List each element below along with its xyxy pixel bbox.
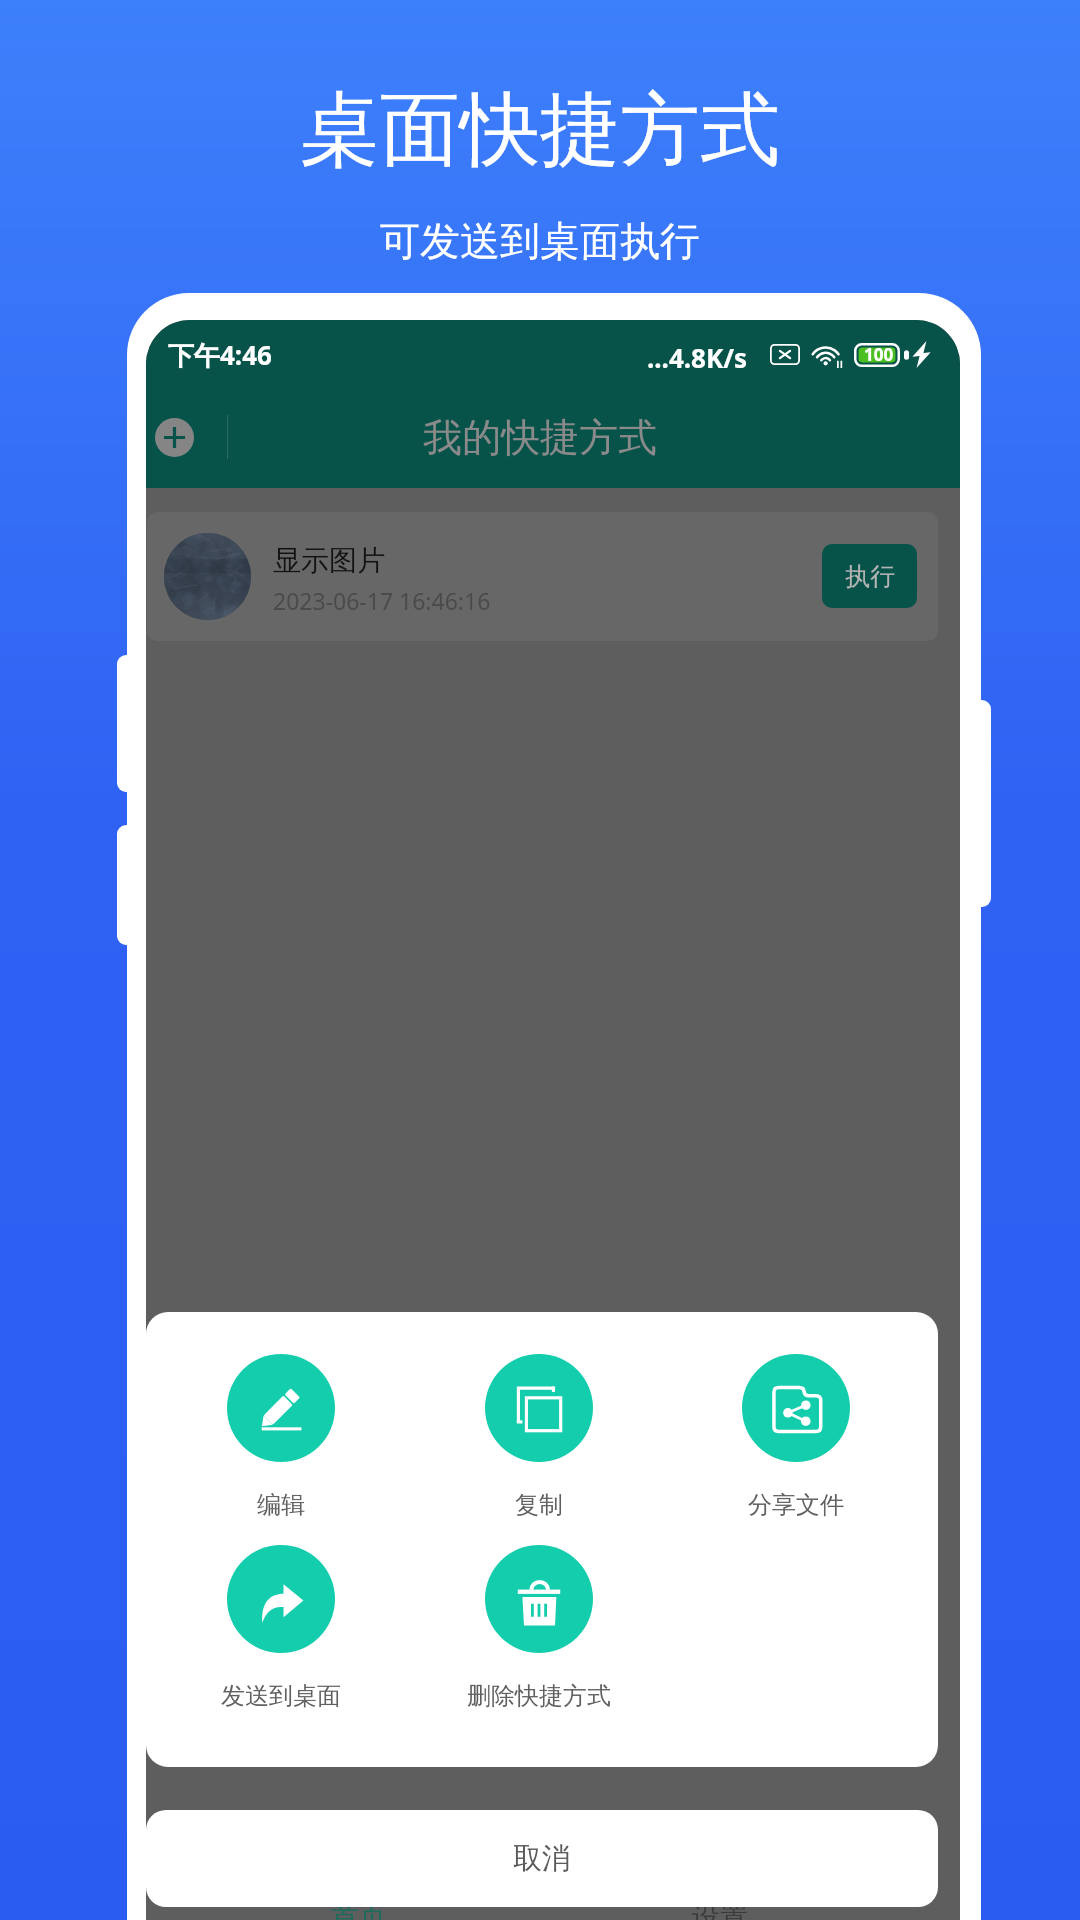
button[interactable]: Add shortcut — [155, 418, 194, 457]
staticText: 100 — [864, 343, 894, 366]
staticText: 2023-06-17 16:46:16 — [273, 585, 491, 616]
button[interactable]: 设置 — [692, 1900, 752, 1920]
button[interactable] — [227, 1354, 335, 1552]
staticText: 复制 — [515, 1490, 563, 1520]
staticText: 可发送到桌面执行 — [380, 216, 700, 266]
staticText: 编辑 — [257, 1490, 305, 1520]
staticText: 分享文件 — [748, 1490, 844, 1520]
staticText: 设置 — [692, 1900, 748, 1920]
button[interactable] — [227, 1545, 335, 1743]
button[interactable] — [485, 1545, 593, 1743]
staticText: 发送到桌面 — [221, 1681, 341, 1711]
staticText: 执行 — [845, 561, 895, 592]
staticText: ...4.8K/s — [647, 340, 748, 375]
button[interactable]: 取消 — [146, 1810, 938, 1907]
staticText: 取消 — [513, 1840, 571, 1877]
button[interactable] — [485, 1354, 593, 1552]
button[interactable] — [742, 1354, 850, 1552]
staticText: 我的快捷方式 — [423, 413, 657, 462]
button[interactable]: 首页 — [331, 1900, 391, 1920]
staticText: 桌面快捷方式 — [300, 80, 780, 181]
button[interactable]: 执行 — [822, 544, 917, 608]
button[interactable]: 显示图片 — [147, 512, 938, 641]
staticText: 显示图片 — [273, 543, 385, 578]
staticText: 下午4:46 — [168, 337, 272, 373]
staticText: 删除快捷方式 — [467, 1681, 611, 1711]
staticText: 首页 — [331, 1900, 387, 1920]
